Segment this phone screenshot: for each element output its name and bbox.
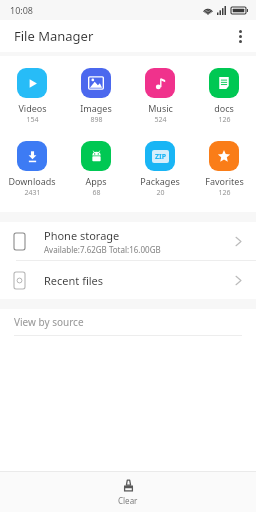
button[interactable]: Clear bbox=[100, 475, 156, 509]
staticText: Music bbox=[148, 102, 173, 114]
staticText: Recent files bbox=[44, 273, 104, 288]
staticText: 10:08 bbox=[10, 4, 34, 16]
staticText: Apps bbox=[85, 175, 107, 187]
staticText: 20 bbox=[156, 188, 165, 198]
button[interactable]: Downloads bbox=[0, 135, 64, 204]
staticText: View by source bbox=[14, 315, 84, 329]
staticText: 126 bbox=[218, 115, 231, 125]
button[interactable]: Recent files bbox=[0, 261, 256, 299]
staticText: 68 bbox=[92, 188, 101, 198]
button[interactable]: ZIP bbox=[128, 135, 192, 204]
staticText: 524 bbox=[154, 115, 167, 125]
staticText: Phone storage bbox=[44, 228, 120, 243]
button[interactable]: Favorites bbox=[192, 135, 256, 204]
staticText: 898 bbox=[90, 115, 103, 125]
button[interactable]: Apps bbox=[64, 135, 128, 204]
button[interactable]: Phone storage bbox=[0, 222, 256, 260]
staticText: Favorites bbox=[205, 175, 244, 187]
staticText: Packages bbox=[140, 175, 180, 187]
staticText: File Manager bbox=[14, 27, 94, 45]
staticText: Images bbox=[80, 102, 112, 114]
button[interactable]: Music bbox=[128, 62, 192, 131]
staticText: Downloads bbox=[8, 175, 56, 187]
staticText: Videos bbox=[18, 102, 47, 114]
staticText: Clear bbox=[118, 495, 138, 506]
staticText: Available:7.62GB Total:16.00GB bbox=[44, 244, 161, 255]
button[interactable]: Videos bbox=[0, 62, 64, 131]
button[interactable]: docs bbox=[192, 62, 256, 131]
staticText: 154 bbox=[26, 115, 39, 125]
staticText: 126 bbox=[218, 188, 231, 198]
button[interactable]: More options bbox=[224, 20, 256, 52]
staticText: 2431 bbox=[24, 188, 41, 198]
staticText: docs bbox=[214, 102, 234, 114]
button[interactable]: Images bbox=[64, 62, 128, 131]
staticText: ZIP bbox=[155, 152, 167, 162]
